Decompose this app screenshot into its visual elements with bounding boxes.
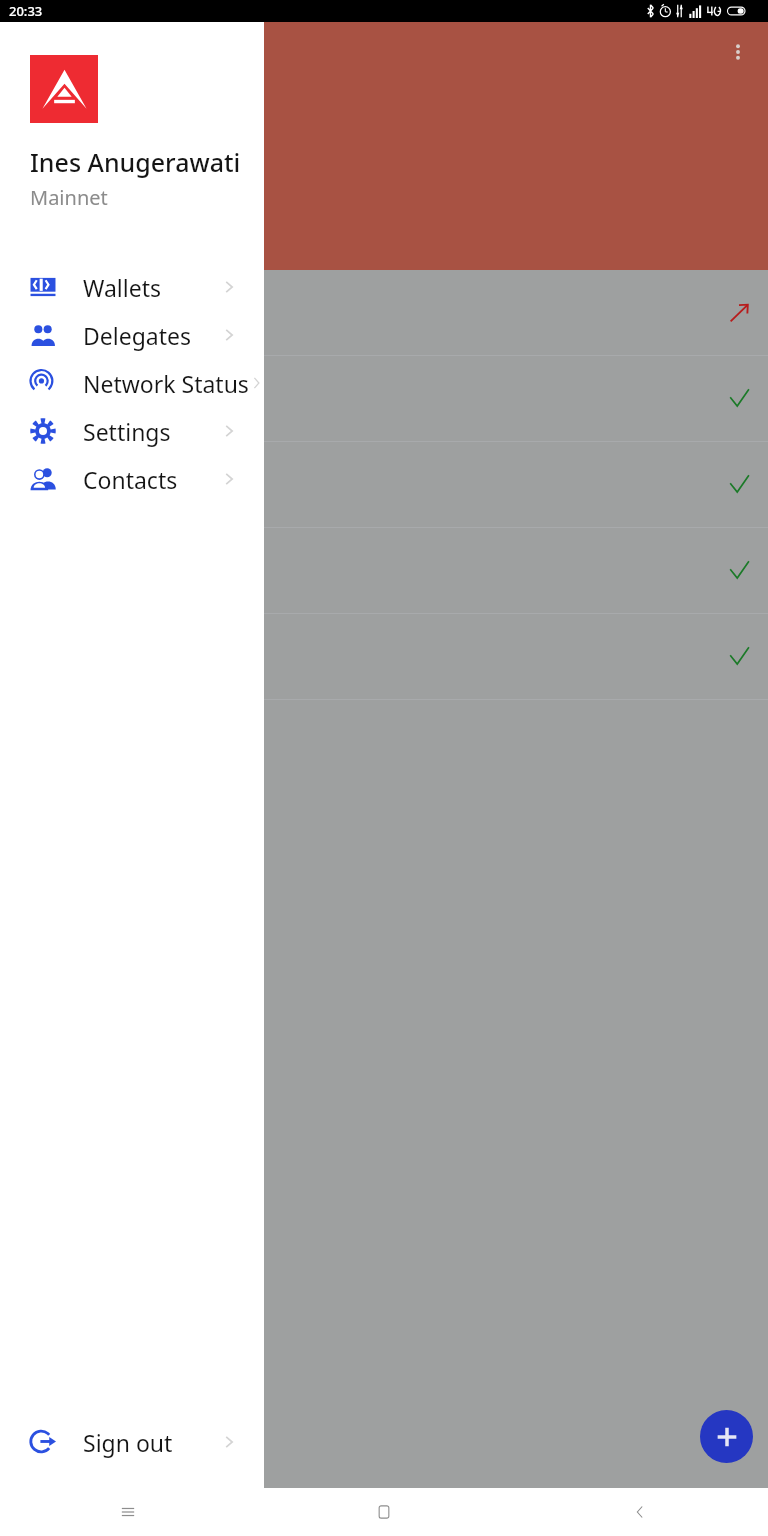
staticText: 20:33 xyxy=(9,2,43,20)
staticText: ays ago | 51+ xyxy=(0,405,122,431)
staticText: Rb54XmcmH xyxy=(0,197,128,226)
staticText: Settings xyxy=(83,416,171,447)
staticText: Sign out xyxy=(83,1427,173,1458)
button[interactable]: Contacts xyxy=(0,455,264,503)
button[interactable]: Delegates xyxy=(0,311,264,359)
staticText: day ago | 51+ xyxy=(0,319,124,345)
button[interactable]: +20 ARK xyxy=(0,356,768,442)
staticText: +20 ARK xyxy=(0,371,88,401)
staticText: Mainnet xyxy=(30,184,108,211)
button[interactable]: More options xyxy=(718,32,758,72)
staticText: Network Status xyxy=(83,368,249,399)
staticText: Contacts xyxy=(83,464,178,495)
staticText: Delegates xyxy=(83,320,192,351)
button[interactable]: Recents xyxy=(0,1488,256,1536)
button[interactable]: +6 ARK xyxy=(0,442,768,528)
button[interactable]: Network Status xyxy=(0,359,264,407)
button[interactable]: -1 ARK xyxy=(0,270,768,356)
staticText: Ines Anugerawati xyxy=(30,145,241,179)
button[interactable]: +7 ARK xyxy=(0,614,768,700)
button[interactable]: Add transaction xyxy=(700,1410,753,1463)
staticText: Wallets xyxy=(83,272,161,303)
button[interactable]: Wallets xyxy=(0,263,264,311)
staticText: -1 ARK xyxy=(0,285,70,315)
staticText: +6 ARK xyxy=(0,457,76,487)
button[interactable]: Settings xyxy=(0,407,264,455)
button[interactable]: Sign out xyxy=(0,1418,264,1466)
button[interactable]: Home xyxy=(256,1488,512,1536)
button[interactable]: Back xyxy=(512,1488,768,1536)
button[interactable]: +8 ARK xyxy=(0,528,768,614)
